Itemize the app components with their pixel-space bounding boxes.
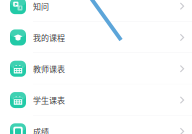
button[interactable]: 成绩 <box>0 116 192 134</box>
staticText: 我的课程 <box>33 32 65 43</box>
staticText: 学生课表 <box>33 94 65 106</box>
button[interactable]: 学生课表 <box>0 84 192 116</box>
button[interactable]: 知问 <box>0 0 192 22</box>
button[interactable]: 我的课程 <box>0 22 192 53</box>
staticText: 成绩 <box>33 126 49 134</box>
staticText: 教师课表 <box>33 63 65 75</box>
button[interactable]: 教师课表 <box>0 53 192 84</box>
staticText: 知问 <box>33 0 49 12</box>
